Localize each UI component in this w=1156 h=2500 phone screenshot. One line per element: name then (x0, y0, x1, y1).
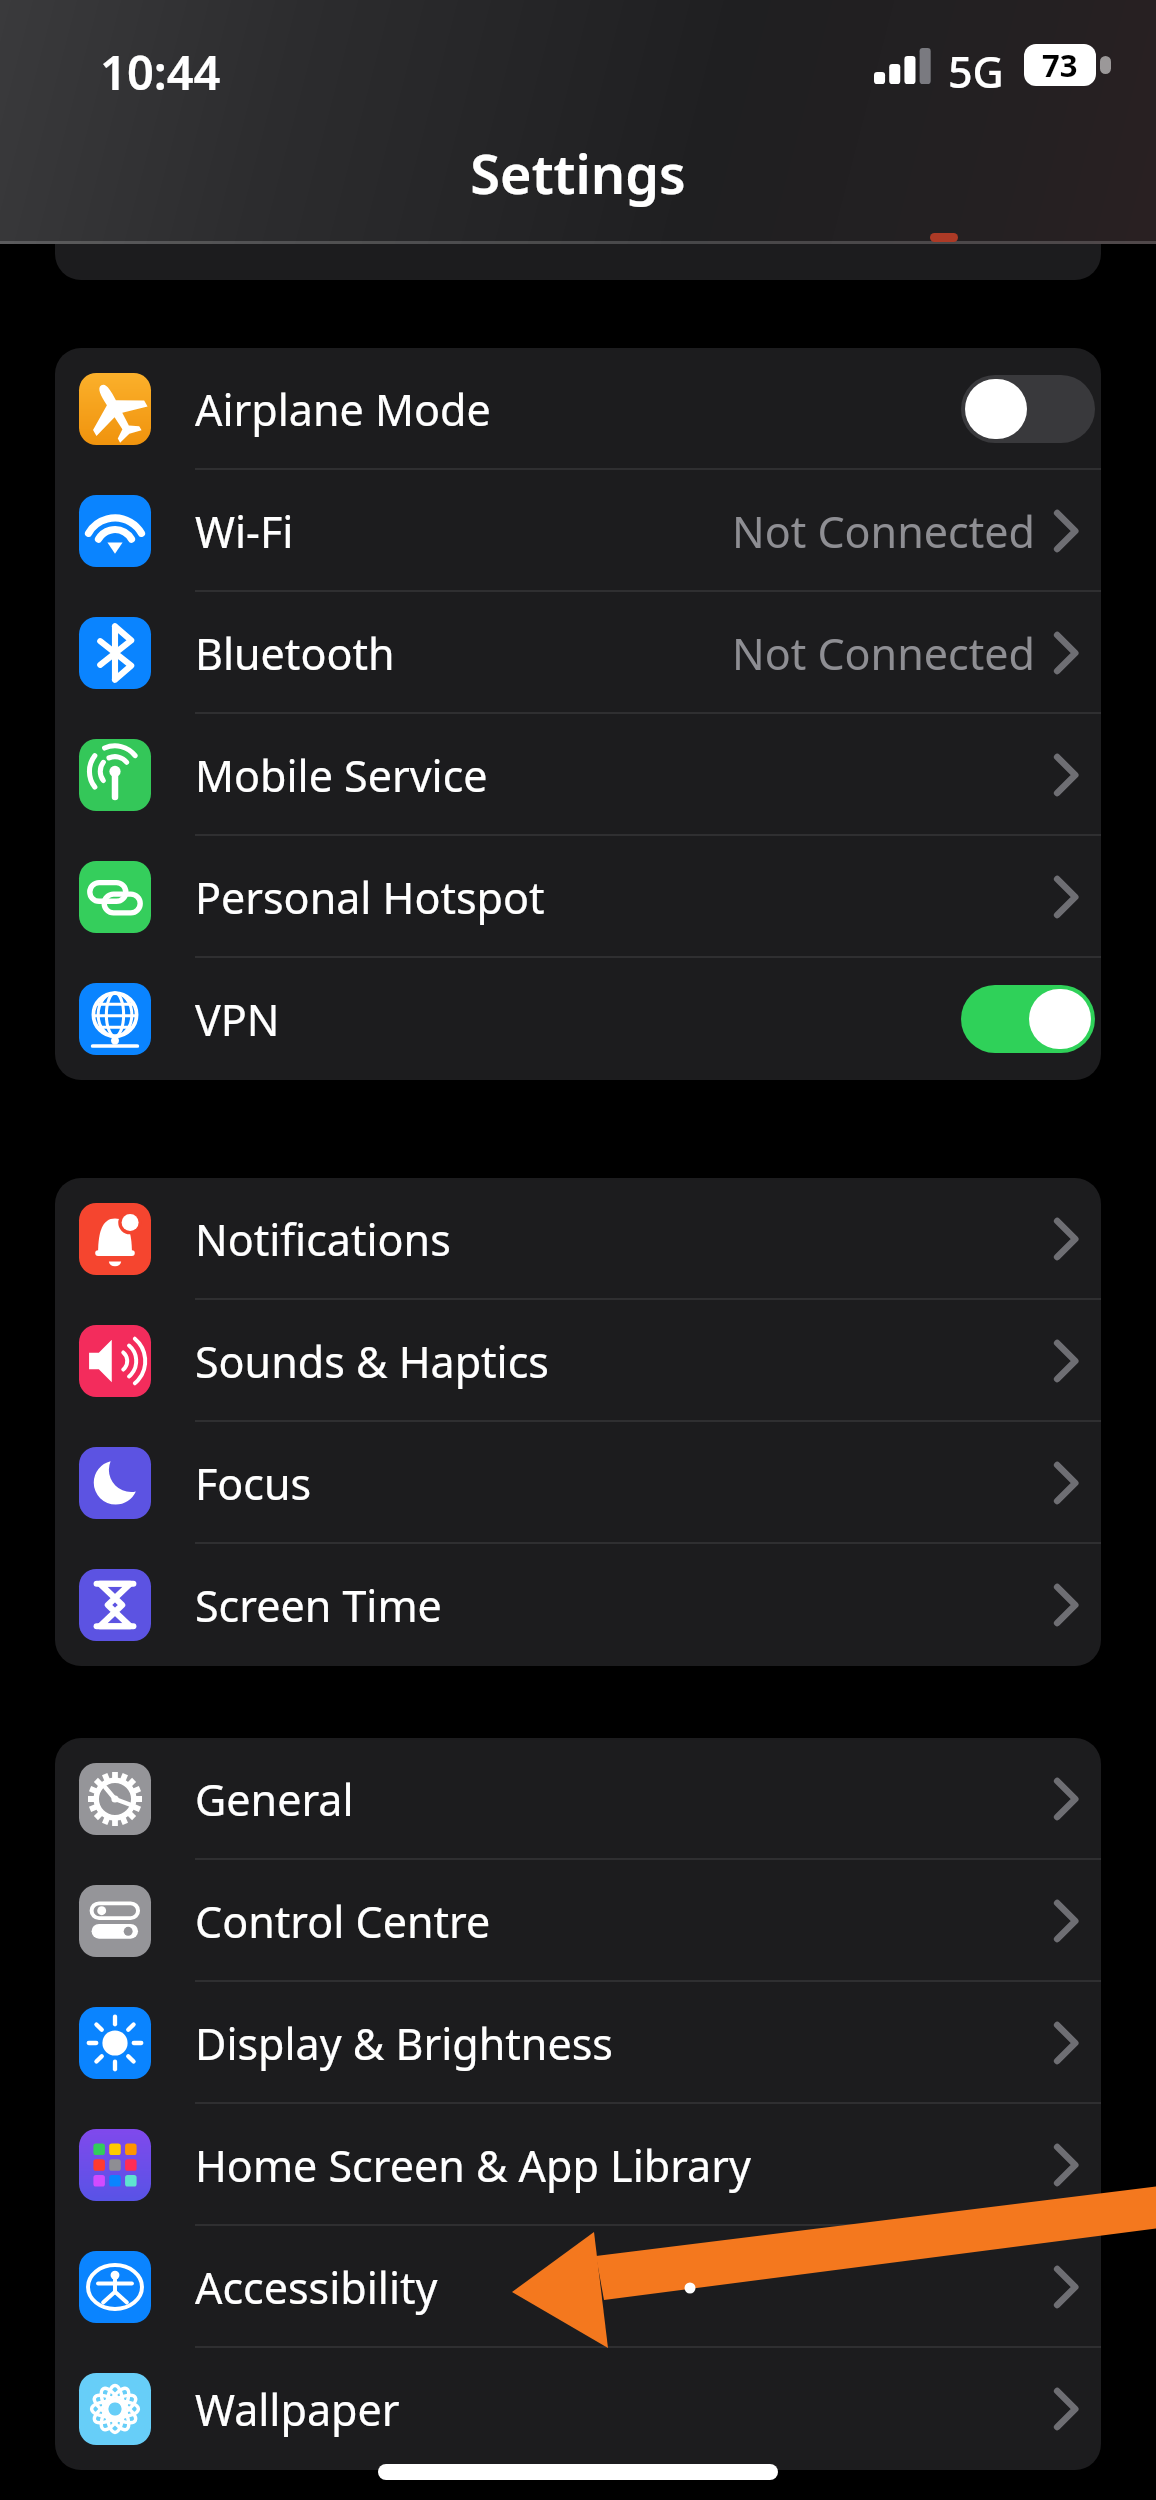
other: Annotation arrow (0, 0, 1156, 2500)
staticText: Focus (195, 1454, 312, 1513)
staticText: Not Connected (732, 502, 1035, 561)
button[interactable]: Sounds & Haptics (55, 1300, 1101, 1422)
button[interactable]: Control Centre (55, 1860, 1101, 1982)
button[interactable]: Home Screen & App Library (55, 2104, 1101, 2226)
button[interactable]: Display & Brightness (55, 1982, 1101, 2104)
button[interactable]: General (55, 1738, 1101, 1860)
staticText: Sounds & Haptics (195, 1332, 549, 1391)
staticText: Accessibility (195, 2258, 438, 2317)
staticText: 73 (1042, 44, 1078, 86)
button[interactable]: Wi-Fi (55, 470, 1101, 592)
staticText: Screen Time (195, 1576, 442, 1635)
button[interactable]: Personal Hotspot (55, 836, 1101, 958)
staticText: Notifications (195, 1210, 451, 1269)
staticText: VPN (195, 990, 280, 1049)
button[interactable]: VPN (55, 958, 1101, 1080)
staticText: Airplane Mode (195, 380, 491, 439)
button[interactable]: Mobile Service (55, 714, 1101, 836)
staticText: Mobile Service (195, 746, 488, 805)
staticText: Control Centre (195, 1892, 491, 1951)
staticText: Settings (470, 136, 686, 208)
staticText: 10:44 (100, 40, 221, 104)
button[interactable]: Focus (55, 1422, 1101, 1544)
staticText: Bluetooth (195, 624, 395, 683)
staticText: General (195, 1770, 354, 1829)
staticText: Wallpaper (195, 2380, 400, 2439)
staticText: Home Screen & App Library (195, 2136, 751, 2195)
button[interactable]: Wallpaper (55, 2348, 1101, 2470)
staticText: Personal Hotspot (195, 868, 545, 927)
staticText: Display & Brightness (195, 2014, 613, 2073)
button[interactable]: Accessibility (55, 2226, 1101, 2348)
staticText: Wi-Fi (195, 502, 294, 561)
button[interactable]: Screen Time (55, 1544, 1101, 1666)
button[interactable]: Notifications (55, 1178, 1101, 1300)
button[interactable]: Toggle, off (961, 375, 1095, 443)
button[interactable]: Airplane Mode (55, 348, 1101, 470)
button[interactable]: Bluetooth (55, 592, 1101, 714)
staticText: 5G (948, 42, 1004, 101)
staticText: Not Connected (732, 624, 1035, 683)
button[interactable]: Toggle, on (961, 985, 1095, 1053)
